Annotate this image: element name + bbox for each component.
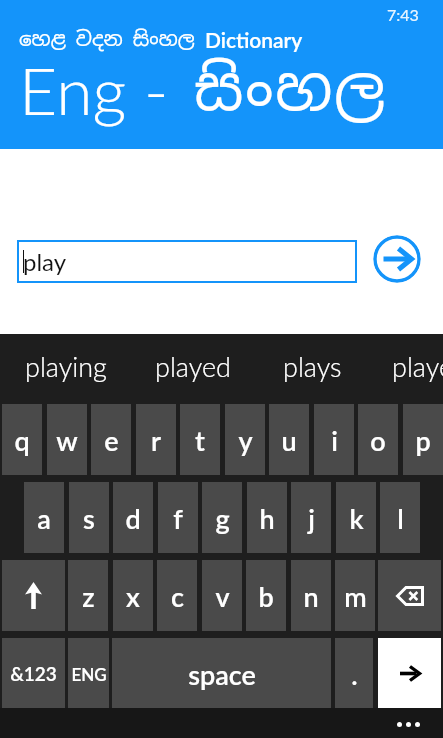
button[interactable]: Enter: [378, 638, 441, 709]
staticText: o: [370, 424, 386, 456]
staticText: space: [188, 658, 256, 690]
button[interactable]: play: [17, 240, 357, 283]
button[interactable]: More options: [393, 717, 424, 732]
staticText: j: [308, 502, 315, 534]
button[interactable]: &123: [2, 638, 65, 709]
staticText: m: [344, 580, 367, 612]
button[interactable]: y: [225, 404, 265, 475]
button[interactable]: g: [202, 482, 242, 553]
button[interactable]: p: [403, 404, 443, 475]
button[interactable]: h: [247, 482, 287, 553]
button[interactable]: u: [269, 404, 309, 475]
staticText: Eng -: [19, 50, 187, 129]
staticText: plays: [283, 350, 342, 382]
staticText: t: [195, 424, 205, 456]
staticText: played: [155, 350, 231, 382]
button[interactable]: s: [69, 482, 109, 553]
staticText: .: [351, 658, 358, 690]
button[interactable]: plays: [275, 344, 350, 388]
staticText: k: [349, 502, 364, 534]
staticText: play: [23, 247, 67, 276]
staticText: playe: [392, 350, 443, 382]
button[interactable]: v: [202, 560, 242, 631]
button[interactable]: k: [336, 482, 376, 553]
staticText: n: [303, 580, 319, 612]
button[interactable]: played: [147, 344, 239, 388]
staticText: e: [104, 424, 119, 456]
button[interactable]: playing: [17, 344, 115, 388]
button[interactable]: x: [113, 560, 153, 631]
button[interactable]: q: [2, 404, 42, 475]
button[interactable]: Shift: [2, 560, 65, 631]
staticText: s: [83, 502, 95, 534]
staticText: 7:43: [387, 5, 419, 24]
button[interactable]: Search: [373, 235, 421, 283]
button[interactable]: e: [91, 404, 131, 475]
button[interactable]: Backspace: [378, 560, 441, 631]
staticText: Dictionary: [205, 27, 303, 52]
staticText: c: [171, 580, 184, 612]
staticText: r: [151, 424, 161, 456]
button[interactable]: i: [314, 404, 354, 475]
staticText: u: [281, 424, 297, 456]
button[interactable]: b: [246, 560, 286, 631]
staticText: playing: [25, 350, 107, 382]
button[interactable]: ENG: [68, 638, 109, 709]
staticText: d: [125, 502, 141, 534]
button[interactable]: t: [180, 404, 220, 475]
button[interactable]: .: [335, 638, 373, 709]
button[interactable]: playe: [384, 344, 443, 388]
button[interactable]: r: [136, 404, 176, 475]
button[interactable]: n: [291, 560, 331, 631]
button[interactable]: d: [113, 482, 153, 553]
button[interactable]: a: [24, 482, 64, 553]
button[interactable]: z: [68, 560, 108, 631]
staticText: x: [126, 580, 140, 612]
staticText: b: [258, 580, 274, 612]
button[interactable]: f: [158, 482, 198, 553]
staticText: a: [37, 502, 51, 534]
button[interactable]: l: [380, 482, 420, 553]
staticText: g: [215, 502, 230, 534]
button[interactable]: c: [157, 560, 197, 631]
button[interactable]: w: [47, 404, 87, 475]
staticText: p: [415, 424, 431, 456]
staticText: සිංහල: [194, 49, 388, 127]
staticText: i: [331, 424, 338, 456]
staticText: &123: [10, 662, 57, 685]
staticText: y: [238, 424, 253, 456]
button[interactable]: j: [291, 482, 331, 553]
staticText: f: [173, 502, 183, 534]
staticText: w: [56, 424, 78, 456]
button[interactable]: o: [358, 404, 398, 475]
staticText: ENG: [71, 664, 107, 684]
staticText: q: [14, 424, 30, 456]
staticText: v: [215, 580, 230, 612]
staticText: හෙළ වදන සිංහල: [19, 26, 205, 52]
button[interactable]: m: [335, 560, 375, 631]
staticText: z: [82, 580, 95, 612]
button[interactable]: space: [112, 638, 331, 709]
staticText: h: [259, 502, 275, 534]
staticText: l: [397, 502, 404, 534]
